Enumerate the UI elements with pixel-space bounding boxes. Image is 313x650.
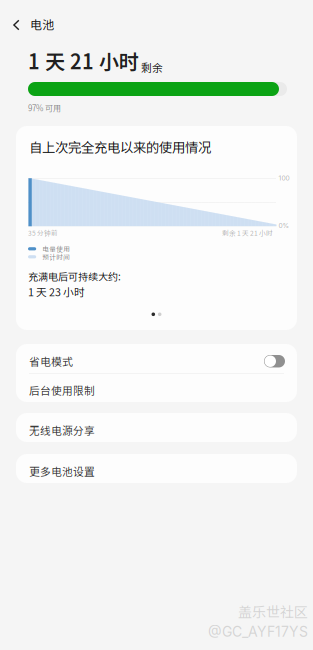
button[interactable]: 电池: [0, 0, 120, 41]
button[interactable]: 无线电源分享: [16, 413, 297, 442]
staticText: 盖乐世社区: [238, 601, 308, 621]
staticText: 1 天 23 小时: [28, 284, 85, 299]
staticText: 0%: [278, 221, 289, 230]
staticText: 电量使用: [42, 244, 70, 254]
staticText: 1 天 21 小时: [28, 46, 139, 75]
staticText: @GC_AYF17YS: [208, 623, 308, 640]
staticText: 预计时间: [42, 252, 70, 262]
staticText: 100: [278, 174, 289, 182]
staticText: 充满电后可持续大约:: [28, 269, 121, 283]
button[interactable]: 省电模式: [16, 344, 297, 373]
button[interactable]: 更多电池设置: [16, 454, 297, 483]
button[interactable]: 后台使用限制: [16, 373, 297, 402]
staticText: 剩余 1 天 21 小时: [222, 228, 273, 238]
staticText: 剩余: [139, 59, 163, 75]
staticText: 35 分钟前: [28, 228, 58, 238]
staticText: 97% 可用: [28, 102, 61, 114]
staticText: 省电模式: [29, 353, 73, 369]
staticText: 无线电源分享: [29, 422, 95, 438]
staticText: 更多电池设置: [29, 463, 95, 479]
staticText: 后台使用限制: [29, 382, 95, 398]
staticText: 电池: [30, 15, 54, 33]
staticText: 自上次完全充电以来的使用情况: [29, 137, 211, 156]
